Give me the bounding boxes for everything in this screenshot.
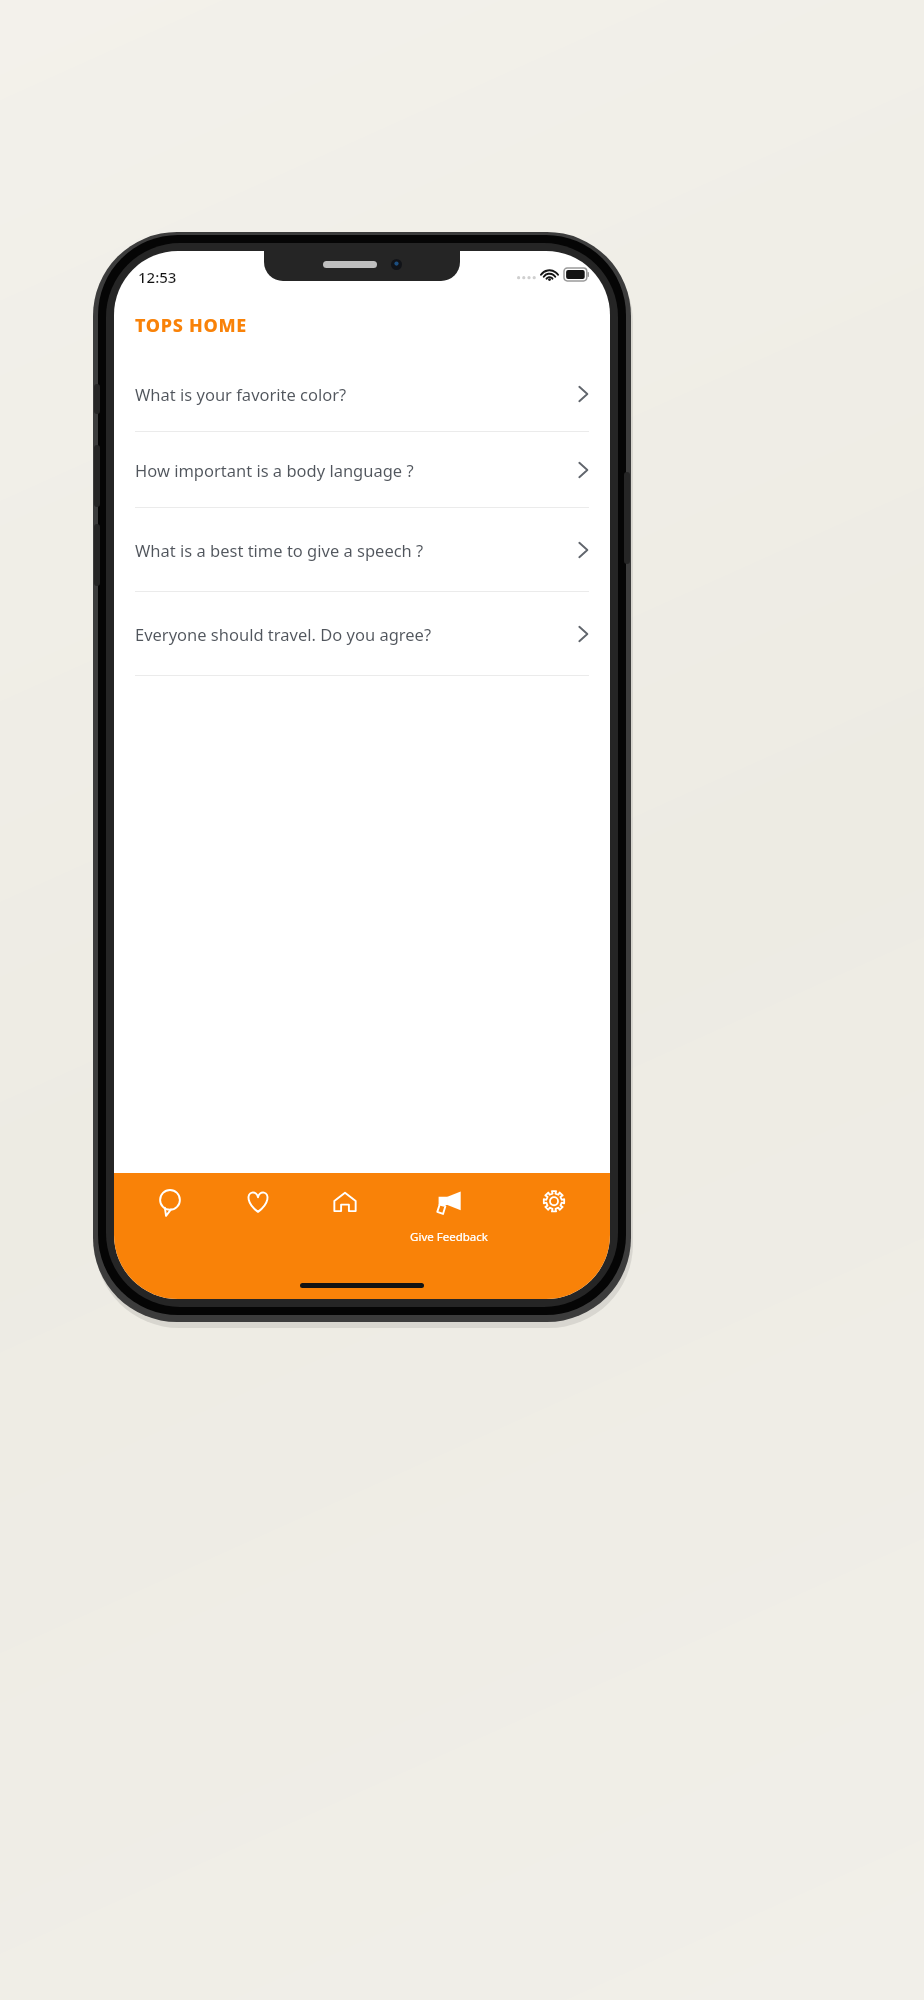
staticText: Give Feedback: [410, 1229, 488, 1245]
button[interactable]: What is your favorite color?: [114, 356, 610, 432]
button[interactable]: What is a best time to give a speech ?: [114, 508, 610, 592]
staticText: Everyone should travel. Do you agree?: [135, 623, 562, 645]
staticText: What is your favorite color?: [135, 383, 562, 405]
button[interactable]: Everyone should travel. Do you agree?: [114, 592, 610, 676]
staticText: TOPS HOME: [135, 313, 248, 338]
button[interactable]: Favorites: [227, 1189, 289, 1233]
button[interactable]: Settings: [523, 1189, 585, 1233]
staticText: What is a best time to give a speech ?: [135, 539, 562, 561]
button[interactable]: Messages: [139, 1189, 201, 1233]
button[interactable]: Give Feedback: [401, 1189, 497, 1245]
staticText: 12:53: [138, 267, 177, 287]
staticText: How important is a body language ?: [135, 459, 562, 481]
button[interactable]: How important is a body language ?: [114, 432, 610, 508]
button[interactable]: Home: [314, 1189, 376, 1233]
